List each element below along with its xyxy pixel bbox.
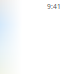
staticText: 9:41 xyxy=(47,2,61,11)
